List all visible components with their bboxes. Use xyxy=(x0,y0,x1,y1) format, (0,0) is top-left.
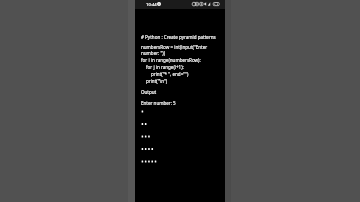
staticText: # Python : Create pyramid patterns xyxy=(141,34,216,40)
staticText: Enter number: 5 xyxy=(141,100,176,106)
staticText: for i in range(numbersRow): xyxy=(141,57,201,63)
staticText: Output xyxy=(141,89,157,95)
staticText: for j in range(i+1): xyxy=(146,64,184,70)
staticText: number: ")) xyxy=(141,50,166,56)
staticText: print("* ", end="") xyxy=(151,71,189,77)
button[interactable]: Python pyramid pattern code snippet xyxy=(135,9,225,202)
other: Status icons xyxy=(193,2,219,6)
staticText: print("\n") xyxy=(146,78,168,84)
staticText: numbersRow = int(input("Enter xyxy=(141,44,208,50)
staticText: 10:44 xyxy=(146,2,157,8)
